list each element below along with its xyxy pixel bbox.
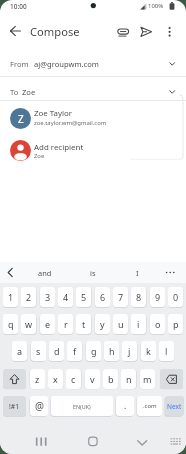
button[interactable] [0, 76, 186, 101]
button[interactable]: i [131, 314, 146, 334]
button[interactable]: k [141, 341, 156, 361]
staticText: r [64, 318, 68, 330]
button[interactable]: 4 [58, 287, 73, 307]
button[interactable]: a [12, 341, 27, 361]
staticText: 100% [148, 2, 164, 10]
staticText: j [128, 345, 131, 357]
button[interactable]: .com [137, 396, 162, 416]
button[interactable]: 3 [40, 287, 55, 307]
button[interactable]: @ [30, 396, 48, 416]
button[interactable] [136, 22, 156, 41]
button[interactable]: r [58, 314, 73, 334]
button[interactable] [112, 22, 132, 41]
staticText: p [173, 318, 179, 330]
staticText: i [137, 318, 140, 330]
button[interactable] [28, 433, 54, 451]
button[interactable]: d [49, 341, 64, 361]
button[interactable] [6, 22, 25, 41]
button[interactable] [0, 104, 186, 135]
button[interactable]: 5 [76, 287, 91, 307]
staticText: 2 [26, 291, 32, 303]
button[interactable]: 6 [95, 287, 110, 307]
button[interactable]: w [21, 314, 36, 334]
button[interactable]: n [121, 369, 136, 389]
staticText: 0 [173, 291, 179, 303]
staticText: y [100, 318, 105, 330]
staticText: 6 [100, 291, 106, 303]
button[interactable] [117, 263, 157, 282]
button[interactable]: o [150, 314, 165, 334]
staticText: Zoe [34, 152, 45, 160]
button[interactable]: . [116, 396, 134, 416]
button[interactable]: 9 [150, 287, 165, 307]
staticText: and [38, 268, 52, 278]
button[interactable] [0, 137, 186, 168]
staticText: x [53, 373, 58, 385]
button[interactable] [129, 433, 155, 451]
button[interactable]: 7 [113, 287, 128, 307]
staticText: h [109, 345, 115, 357]
staticText: From [10, 59, 29, 69]
staticText: v [90, 373, 95, 385]
button[interactable]: EN(UK) [51, 396, 113, 416]
staticText: Z [18, 112, 24, 126]
staticText: 5 [81, 291, 87, 303]
staticText: .com [143, 402, 157, 410]
staticText: zoe.taylor.wm@gmail.com [34, 119, 107, 127]
staticText: z [35, 373, 40, 385]
staticText: b [108, 373, 114, 385]
staticText: is [90, 268, 96, 278]
button[interactable] [166, 434, 184, 449]
staticText: 7 [118, 291, 124, 303]
button[interactable]: p [168, 314, 183, 334]
button[interactable] [160, 369, 183, 389]
staticText: Compose [30, 24, 80, 39]
staticText: 9 [155, 291, 161, 303]
button[interactable]: !#1 [3, 396, 26, 416]
button[interactable]: b [103, 369, 118, 389]
staticText: @ [35, 399, 44, 413]
staticText: a [17, 345, 23, 357]
button[interactable]: x [48, 369, 63, 389]
button[interactable] [161, 22, 179, 41]
button[interactable] [160, 263, 180, 282]
staticText: q [8, 318, 14, 330]
button[interactable]: y [95, 314, 110, 334]
button[interactable] [25, 263, 65, 282]
button[interactable]: u [113, 314, 128, 334]
button[interactable]: l [159, 341, 174, 361]
staticText: u [118, 318, 124, 330]
staticText: o [155, 318, 161, 330]
staticText: l [165, 345, 168, 357]
button[interactable]: j [122, 341, 137, 361]
button[interactable] [73, 263, 113, 282]
button[interactable]: v [85, 369, 100, 389]
button[interactable]: s [31, 341, 46, 361]
staticText: 10:00 [10, 2, 27, 11]
staticText: f [73, 345, 77, 357]
button[interactable] [80, 433, 106, 451]
button[interactable]: m [140, 369, 155, 389]
staticText: k [146, 345, 151, 357]
button[interactable]: e [40, 314, 55, 334]
button[interactable]: h [104, 341, 119, 361]
staticText: 8 [136, 291, 142, 303]
staticText: To [10, 87, 19, 97]
button[interactable]: z [30, 369, 45, 389]
button[interactable]: c [66, 369, 81, 389]
button[interactable] [0, 50, 186, 76]
button[interactable]: 8 [131, 287, 146, 307]
button[interactable]: g [86, 341, 101, 361]
button[interactable]: q [3, 314, 18, 334]
button[interactable]: Next [165, 396, 184, 416]
staticText: n [126, 373, 132, 385]
button[interactable] [2, 263, 18, 282]
button[interactable]: 0 [168, 287, 183, 307]
staticText: g [91, 345, 97, 357]
button[interactable]: 1 [3, 287, 18, 307]
button[interactable] [3, 369, 26, 389]
button[interactable]: f [67, 341, 82, 361]
staticText: 4 [63, 291, 69, 303]
button[interactable]: t [76, 314, 91, 334]
button[interactable]: 2 [21, 287, 36, 307]
